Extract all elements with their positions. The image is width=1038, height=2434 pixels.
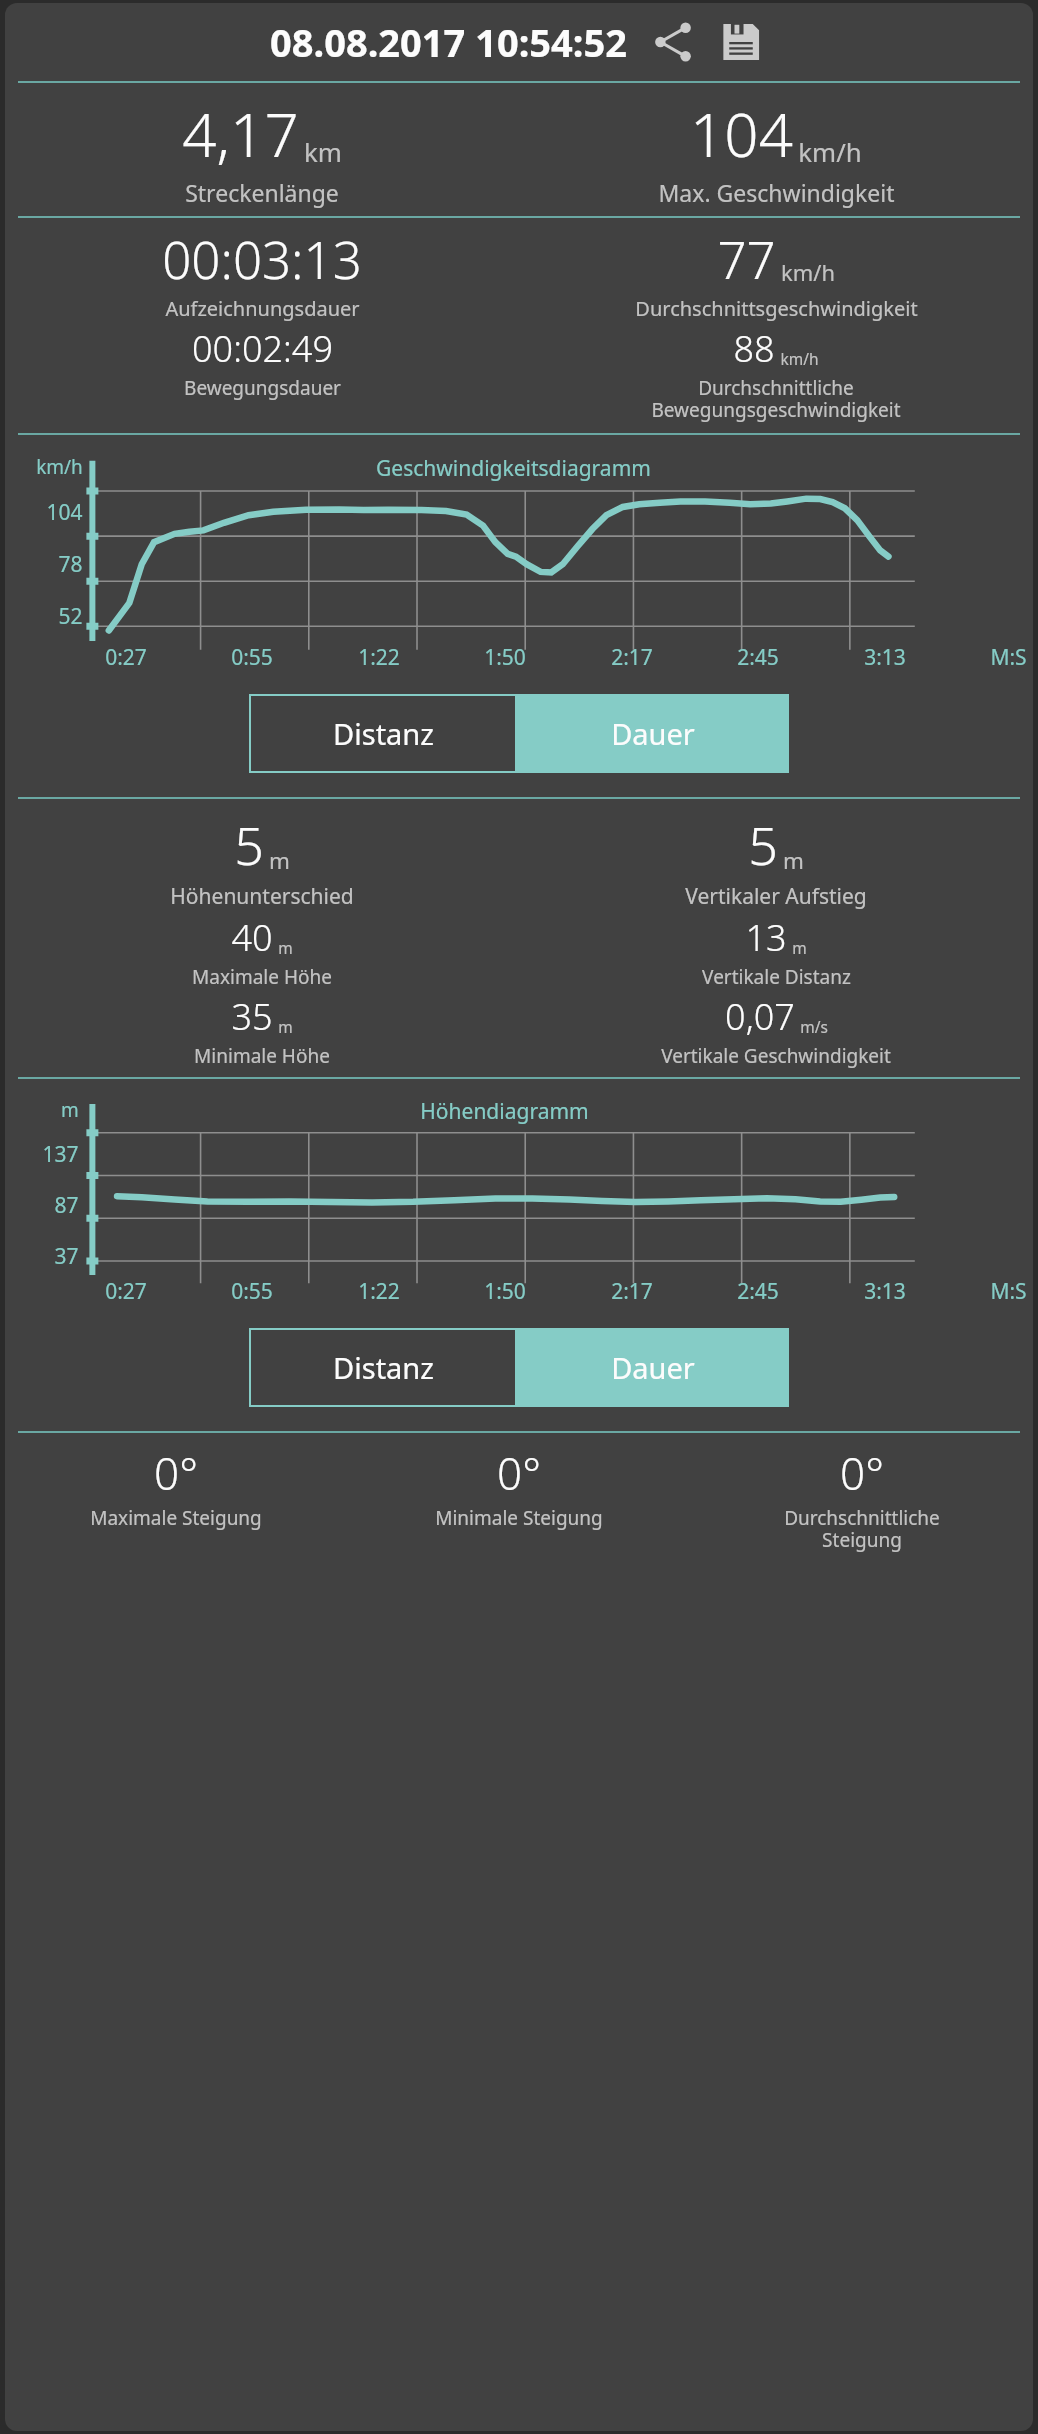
staticText: 52 [58,602,83,631]
staticText: 00:02:49 [192,324,333,373]
staticText: 0:27 [105,643,147,672]
staticText: Minimale Höhe [194,1043,330,1069]
staticText: m/s [800,1016,828,1037]
staticText: 88 [733,324,775,373]
staticText: 104 [690,93,793,175]
staticText: 0° [497,1443,541,1503]
staticText: Höhendiagramm [420,1097,589,1126]
staticText: M:S [990,1277,1027,1306]
staticText: 78 [58,550,83,579]
staticText: 137 [42,1140,79,1169]
button[interactable]: Share [645,14,701,70]
staticText: Maximale Steigung [90,1505,262,1531]
staticText: 13 [745,913,787,962]
staticText: 4,17 [182,93,299,175]
staticText: km/h [36,454,83,480]
staticText: m [269,845,290,875]
staticText: Distanz [333,714,434,753]
staticText: Max. Geschwindigkeit [658,177,895,208]
staticText: m [278,1016,293,1037]
staticText: Vertikale Geschwindigkeit [661,1043,891,1069]
staticText: Maximale Höhe [192,964,332,990]
staticText: Dauer [611,1348,695,1387]
staticText: 40 [231,913,273,962]
staticText: Dauer [611,714,695,753]
staticText: km/h [781,258,835,288]
staticText: Vertikale Distanz [702,964,851,990]
staticText: 5 [748,809,778,880]
staticText: 3:13 [864,1277,906,1306]
staticText: m [61,1097,79,1123]
staticText: Distanz [333,1348,434,1387]
button[interactable]: Dauer [517,694,789,773]
button[interactable]: Distanz [251,1330,515,1405]
staticText: 2:17 [611,1277,653,1306]
staticText: 35 [231,992,273,1041]
staticText: Minimale Steigung [435,1505,603,1531]
staticText: Streckenlänge [185,177,339,208]
staticText: 87 [54,1191,79,1220]
staticText: 1:22 [358,643,400,672]
staticText: 00:03:13 [162,224,362,293]
staticText: Höhenunterschied [170,882,354,911]
staticText: M:S [990,643,1027,672]
staticText: 08.08.2017 10:54:52 [270,16,627,68]
staticText: 0:55 [231,1277,273,1306]
staticText: 0:27 [105,1277,147,1306]
staticText: 3:13 [864,643,906,672]
staticText: 37 [54,1242,79,1271]
staticText: km [304,134,342,169]
staticText: Aufzeichnungsdauer [165,295,360,322]
staticText: 2:45 [737,643,779,672]
staticText: 1:50 [484,1277,526,1306]
button[interactable]: Distanz [251,696,515,771]
staticText: Bewegungsdauer [184,375,341,401]
staticText: Geschwindigkeitsdiagramm [376,454,651,483]
staticText: 0:55 [231,643,273,672]
staticText: 2:17 [611,643,653,672]
staticText: 77 [717,224,776,293]
staticText: m [278,937,293,958]
staticText: Durchschnittsgeschwindigkeit [635,295,918,322]
staticText: 5 [234,809,264,880]
staticText: 0° [154,1443,198,1503]
staticText: m [783,845,804,875]
staticText: 0° [840,1443,884,1503]
staticText: 2:45 [737,1277,779,1306]
staticText: km/h [780,348,819,369]
staticText: Durchschnittliche Steigung [784,1505,940,1553]
button[interactable]: Save [713,14,769,70]
staticText: Vertikaler Aufstieg [685,882,867,911]
staticText: 104 [46,498,83,527]
button[interactable]: Dauer [517,1328,789,1407]
staticText: 0,07 [725,992,795,1041]
staticText: Durchschnittliche Bewegungsgeschwindigke… [651,375,901,423]
staticText: km/h [798,134,862,169]
staticText: m [792,937,807,958]
staticText: 1:22 [358,1277,400,1306]
staticText: 1:50 [484,643,526,672]
